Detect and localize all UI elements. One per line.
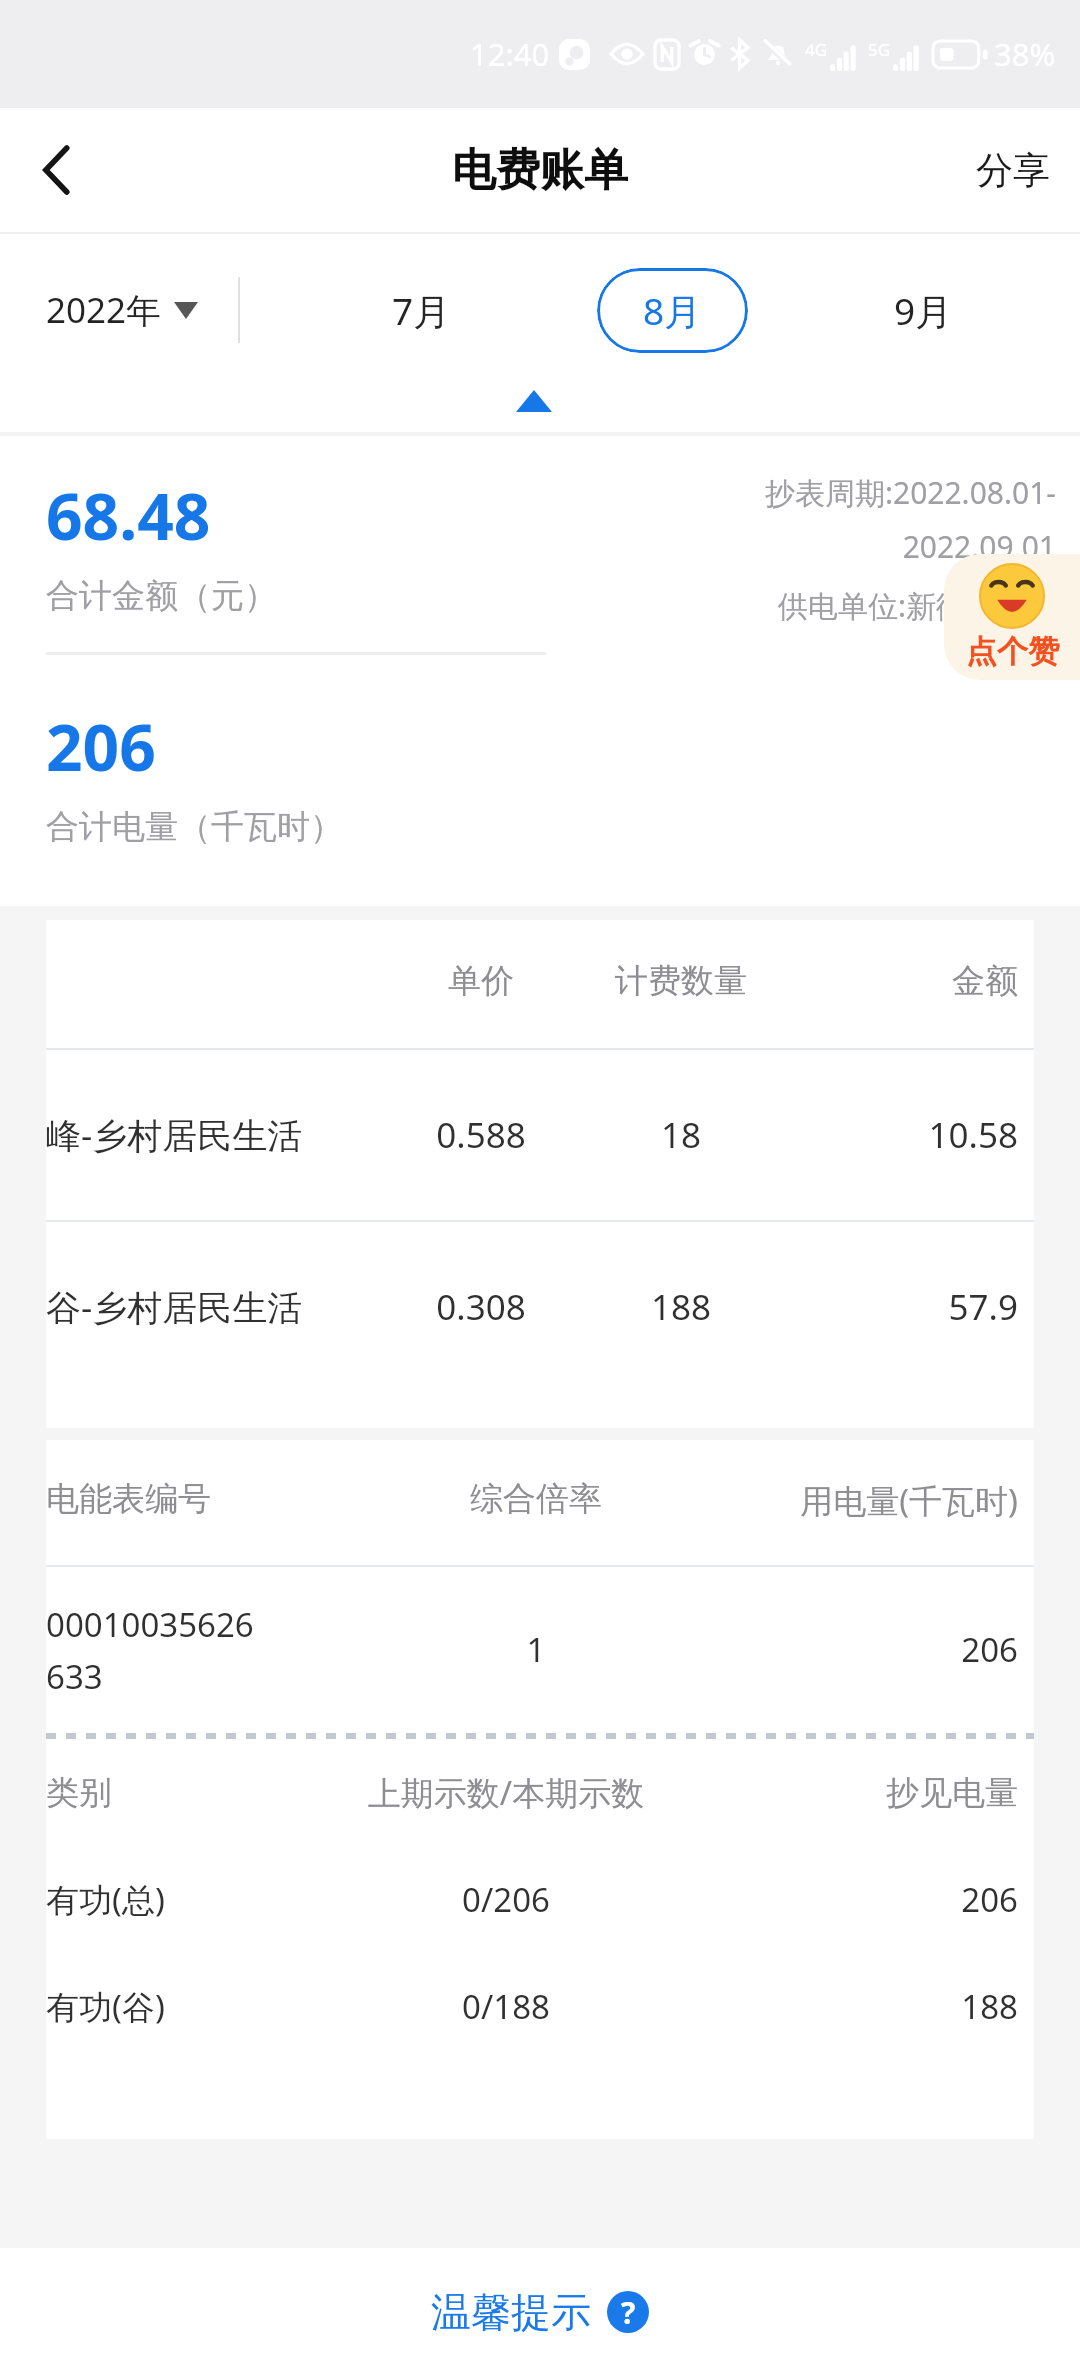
staticText: 38% (994, 33, 1056, 75)
staticText: ? (621, 2292, 636, 2333)
staticText: 计费数量 (566, 960, 796, 1002)
button[interactable]: 有功(谷) (46, 1984, 1034, 2029)
staticText: 206 (46, 703, 156, 790)
staticText: 温馨提示 (431, 2287, 591, 2337)
staticText: 单价 (396, 960, 566, 1002)
staticText: 类别 (46, 1772, 336, 1814)
staticText: 综合倍率 (386, 1478, 686, 1520)
button[interactable]: 9月 (876, 271, 971, 350)
button[interactable]: 有功(总) (46, 1877, 1034, 1922)
staticText: 金额 (796, 960, 1018, 1002)
staticText: 68.48 (46, 472, 211, 559)
staticText: 合计电量（千瓦时） (46, 806, 343, 848)
staticText: 206 (676, 1877, 1018, 1922)
staticText: 4G (805, 38, 828, 61)
button[interactable]: 点个赞 (944, 554, 1080, 680)
staticText: 供电单位:新街供电所 (516, 585, 1056, 626)
button[interactable]: 2022年 (46, 286, 198, 334)
staticText: 2022年 (46, 286, 162, 334)
staticText: 谷-乡村居民生活 (46, 1283, 396, 1331)
staticText: 206 (686, 1627, 1018, 1672)
staticText: 抄见电量 (676, 1772, 1018, 1814)
staticText: 57.9 (796, 1283, 1018, 1331)
staticText: 电费账单 (452, 143, 628, 198)
staticText: 5G (868, 38, 891, 61)
staticText: 分享 (976, 147, 1050, 194)
staticText: 1 (386, 1627, 686, 1672)
staticText: 抄表周期:2022.08.01- 2022.09.01 (516, 472, 1056, 567)
staticText: 8月 (643, 285, 702, 336)
staticText: 0/188 (336, 1984, 676, 2029)
staticText: 10.58 (796, 1111, 1018, 1159)
button[interactable]: 7月 (374, 271, 469, 350)
button[interactable]: 谷-乡村居民生活 (46, 1222, 1034, 1392)
staticText: 188 (676, 1984, 1018, 2029)
button[interactable]: 分享 (966, 137, 1060, 204)
staticText: 00010035626 633 (46, 1602, 386, 1698)
staticText: 有功(谷) (46, 1984, 336, 2029)
staticText: 0.588 (396, 1111, 566, 1159)
staticText: 188 (566, 1283, 796, 1331)
staticText: 电能表编号 (46, 1478, 386, 1520)
staticText: 用电量(千瓦时) (686, 1478, 1018, 1523)
staticText: 有功(总) (46, 1877, 336, 1922)
button[interactable]: 温馨提示 (421, 2277, 659, 2347)
staticText: 合计金额（元） (46, 575, 277, 617)
staticText: 峰-乡村居民生活 (46, 1111, 396, 1159)
staticText: 7月 (392, 285, 451, 336)
staticText: 12:40 (470, 33, 550, 75)
button[interactable]: 峰-乡村居民生活 (46, 1050, 1034, 1220)
button[interactable]: 8月 (597, 268, 748, 353)
button[interactable]: 返回 (14, 127, 100, 213)
staticText: 点个赞 (966, 632, 1059, 671)
staticText: 上期示数/本期示数 (336, 1770, 676, 1815)
staticText: 18 (566, 1111, 796, 1159)
staticText: 0.308 (396, 1283, 566, 1331)
staticText: 9月 (894, 285, 953, 336)
staticText: 0/206 (336, 1877, 676, 1922)
